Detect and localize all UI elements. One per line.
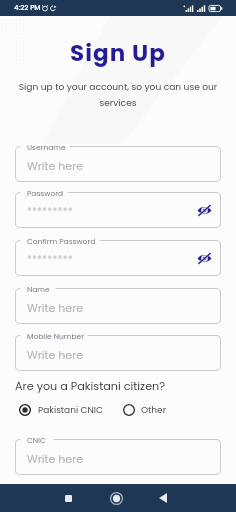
staticText: Name <box>27 284 50 294</box>
staticText: Sign up to your account, so you can use … <box>14 80 222 109</box>
button[interactable]: CNIC <box>15 439 221 475</box>
staticText: Are you a Pakistani citizen? <box>15 378 166 394</box>
staticText: CNIC <box>27 435 46 445</box>
button[interactable]: Show password <box>195 201 213 219</box>
staticText: Username <box>27 142 66 152</box>
staticText: Write here <box>27 451 84 466</box>
staticText: Sign Up <box>0 37 236 69</box>
staticText: Confirm Password <box>27 236 96 246</box>
button[interactable]: Password <box>15 192 221 228</box>
staticText: Write here <box>27 158 84 173</box>
button[interactable]: Other <box>121 402 167 418</box>
button[interactable]: Home <box>102 484 130 512</box>
button[interactable]: Recents <box>54 484 82 512</box>
staticText: Write here <box>27 347 84 362</box>
button[interactable]: Name <box>15 288 221 324</box>
staticText: Write here <box>27 300 84 315</box>
button[interactable]: Confirm Password <box>15 240 221 276</box>
button[interactable]: Pakistani CNIC <box>17 402 104 418</box>
staticText: Other <box>141 404 167 417</box>
button[interactable]: Back <box>149 484 177 512</box>
button[interactable]: Username <box>15 146 221 182</box>
staticText: Password <box>27 188 64 198</box>
staticText: Pakistani CNIC <box>38 404 104 417</box>
staticText: 4:22 PM <box>14 3 41 13</box>
button[interactable]: Show password <box>195 249 213 267</box>
button[interactable]: Mobile Number <box>15 335 221 371</box>
staticText: Mobile Number <box>27 331 84 341</box>
